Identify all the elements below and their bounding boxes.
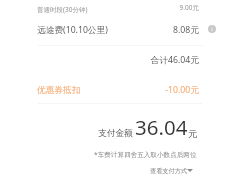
button[interactable]: 远途费(10.10公里) <box>33 17 205 43</box>
staticText: 9.00元 <box>79 3 199 12</box>
staticText: 优惠券抵扣 <box>37 85 81 96</box>
staticText: 远途费(10.10公里) <box>37 24 108 36</box>
staticText: 元 <box>188 128 198 140</box>
button[interactable]: 查看支付方式 <box>146 163 196 177</box>
staticText: *车费计算四舍五入取小数点后两位 <box>94 150 197 159</box>
staticText: -10.00元 <box>79 84 199 96</box>
staticText: 合计46.04元 <box>79 54 199 66</box>
staticText: 查看支付方式 <box>150 167 188 175</box>
staticText: 支付金额 <box>98 128 133 139</box>
button[interactable]: 费用说明 <box>208 25 216 33</box>
button[interactable]: 优惠券抵扣 <box>33 78 205 102</box>
staticText: 36.04 <box>135 113 188 141</box>
button[interactable]: 普通时段(30分钟) <box>33 0 205 16</box>
staticText: 8.08元 <box>79 24 199 36</box>
staticText: 普通时段(30分钟) <box>37 5 88 14</box>
